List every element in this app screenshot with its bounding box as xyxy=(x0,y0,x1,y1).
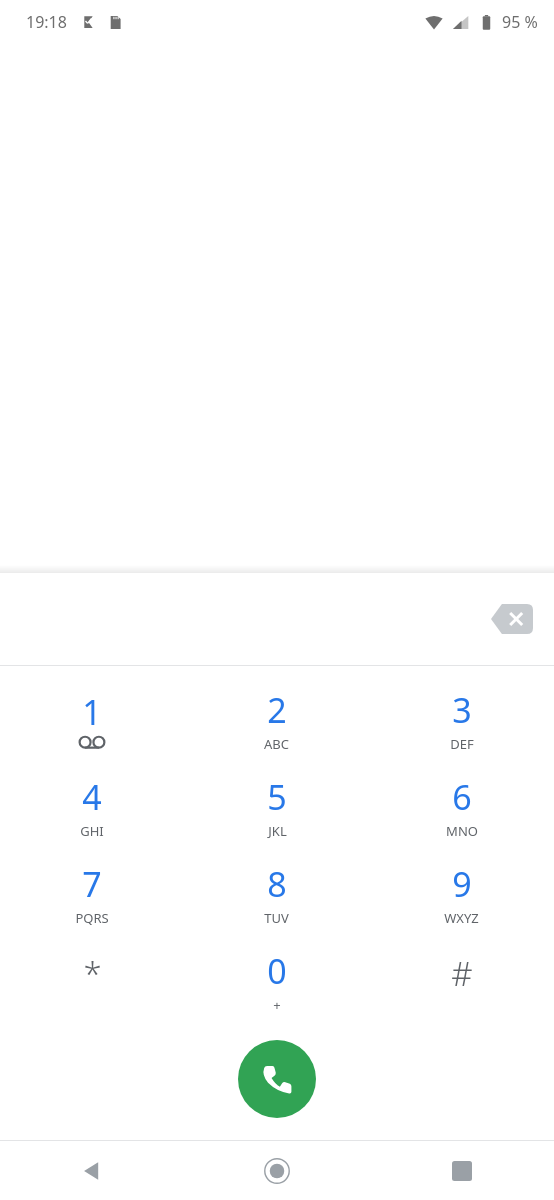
button[interactable]: 2 xyxy=(184,676,369,763)
button[interactable]: * xyxy=(0,937,184,1024)
staticText: ABC xyxy=(264,735,289,753)
staticText: 6 xyxy=(452,774,472,820)
staticText: 95 % xyxy=(502,11,538,33)
staticText: PQRS xyxy=(75,909,109,927)
button[interactable]: Recents xyxy=(369,1141,554,1200)
button[interactable]: Home xyxy=(184,1141,369,1200)
staticText: MNO xyxy=(446,822,478,840)
button[interactable]: 4 xyxy=(0,763,184,850)
staticText: 4 xyxy=(82,774,102,820)
staticText: 1 xyxy=(82,689,102,735)
button[interactable]: 8 xyxy=(184,850,369,937)
button[interactable]: Back xyxy=(0,1141,184,1200)
staticText: GHI xyxy=(80,822,104,840)
button[interactable]: 9 xyxy=(369,850,554,937)
staticText: TUV xyxy=(264,909,289,927)
button[interactable]: 5 xyxy=(184,763,369,850)
button[interactable]: 0 xyxy=(184,937,369,1024)
staticText: 3 xyxy=(452,687,472,733)
button[interactable]: # xyxy=(369,937,554,1024)
staticText: DEF xyxy=(450,735,474,753)
staticText: 8 xyxy=(267,861,287,907)
button[interactable]: Call xyxy=(238,1040,316,1118)
staticText: 9 xyxy=(452,861,472,907)
button[interactable]: 7 xyxy=(0,850,184,937)
staticText: WXYZ xyxy=(444,909,479,927)
staticText: + xyxy=(273,996,281,1014)
button[interactable]: 6 xyxy=(369,763,554,850)
staticText: # xyxy=(451,951,473,996)
staticText: JKL xyxy=(268,822,287,840)
staticText: * xyxy=(83,951,102,996)
staticText: 0 xyxy=(267,948,287,994)
button[interactable]: 1 xyxy=(0,676,184,763)
staticText: 19:18 xyxy=(26,11,67,33)
button[interactable]: Backspace xyxy=(484,597,540,641)
staticText: 2 xyxy=(267,687,287,733)
staticText: 5 xyxy=(267,774,287,820)
staticText: 7 xyxy=(82,861,102,907)
button[interactable]: 3 xyxy=(369,676,554,763)
